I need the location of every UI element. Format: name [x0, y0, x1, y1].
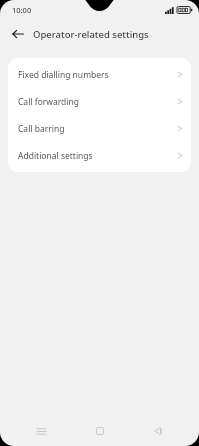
button[interactable]: Call barring	[8, 115, 191, 142]
staticText: Call forwarding	[18, 96, 177, 108]
button[interactable]: Back	[141, 418, 175, 444]
button[interactable]: Home	[83, 418, 117, 444]
button[interactable]: Fixed dialling numbers	[8, 61, 191, 88]
button[interactable]: Recent apps	[24, 418, 58, 444]
staticText: Operator-related settings	[33, 28, 149, 41]
button[interactable]: Call forwarding	[8, 88, 191, 115]
button[interactable]: Back	[8, 24, 28, 44]
staticText: Call barring	[18, 123, 177, 135]
staticText: 10:00	[12, 5, 32, 15]
button[interactable]: Additional settings	[8, 142, 191, 169]
staticText: Fixed dialling numbers	[18, 69, 177, 81]
staticText: Additional settings	[18, 150, 177, 162]
